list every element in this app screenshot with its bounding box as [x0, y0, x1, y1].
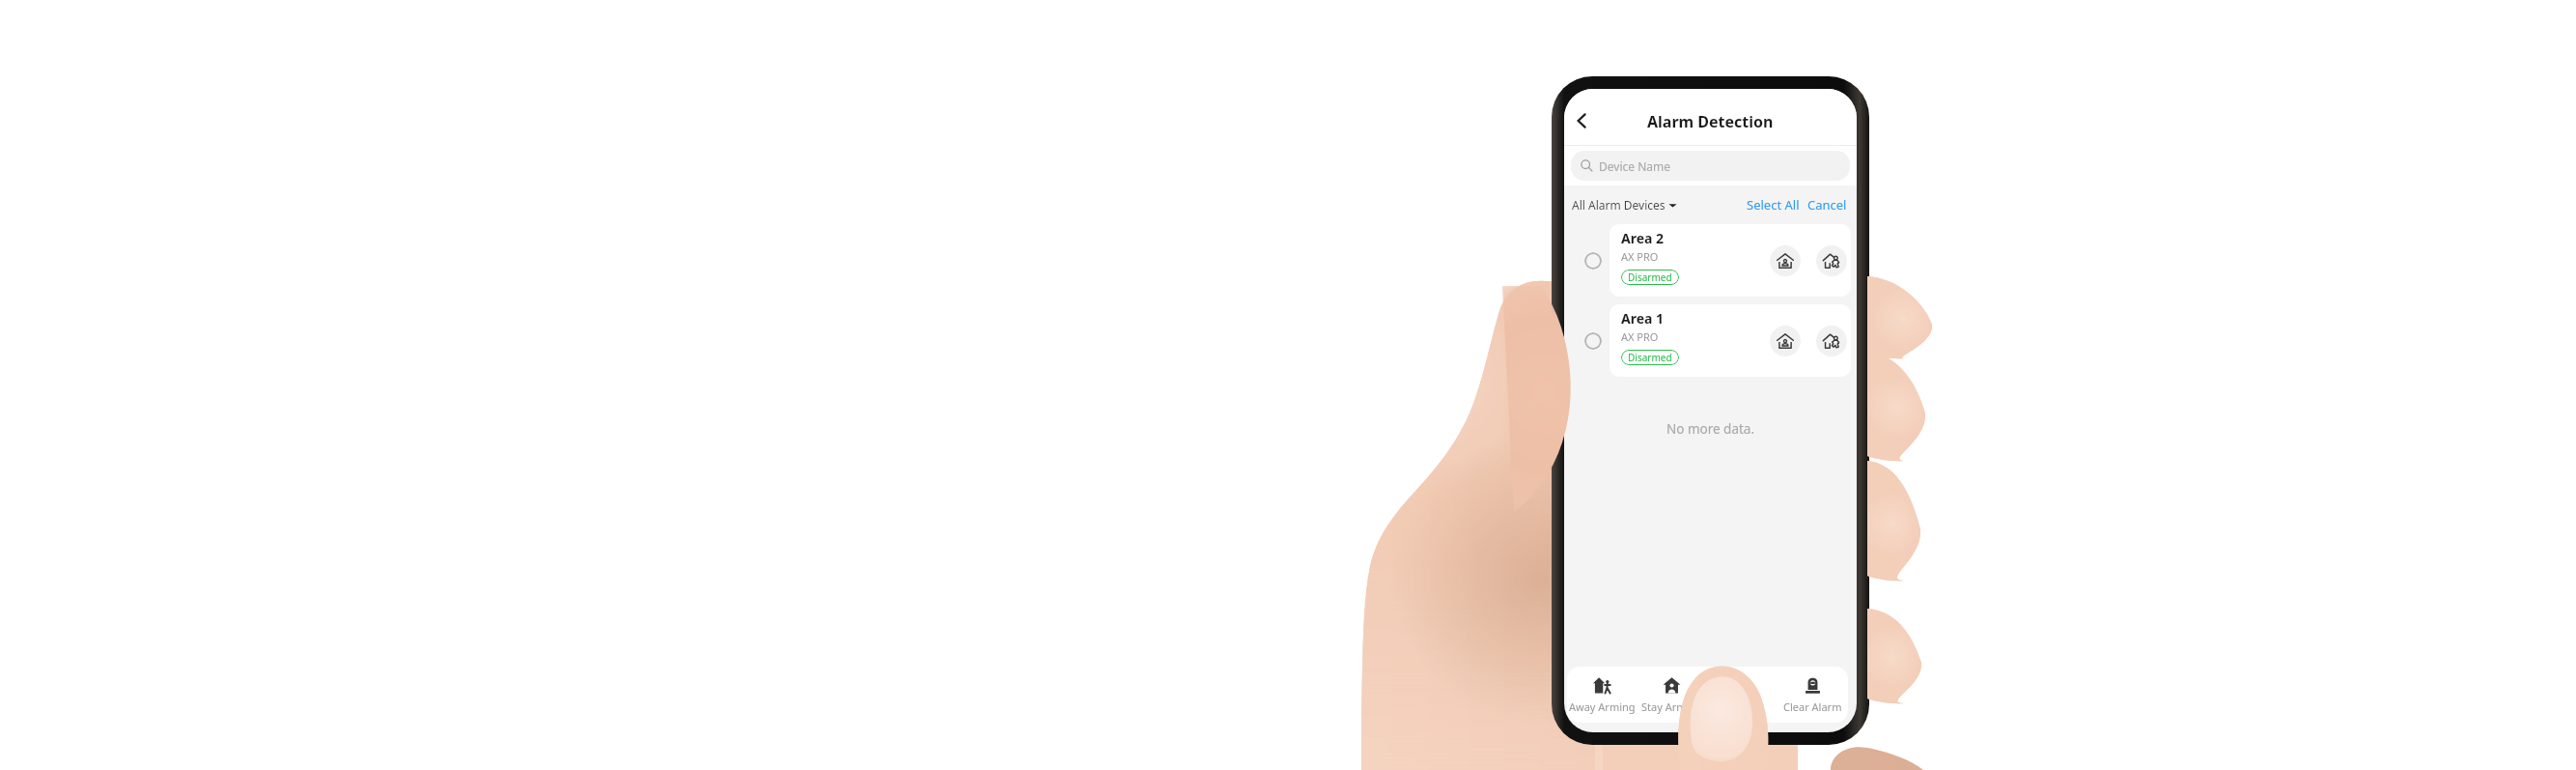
staticText: Disarm	[1724, 699, 1761, 714]
button[interactable]: Select Area 2	[1577, 244, 1610, 277]
button[interactable]: Stay Arming	[1637, 673, 1707, 717]
button[interactable]: Disarm	[1707, 673, 1778, 717]
staticText: All Alarm Devices	[1572, 197, 1666, 213]
staticText: AX PRO	[1621, 329, 1659, 344]
button[interactable]: Back	[1566, 105, 1597, 136]
button[interactable]: Away arming	[1816, 245, 1847, 276]
button[interactable]: Away Arming	[1567, 673, 1637, 717]
staticText: Disarmed	[1628, 271, 1672, 284]
button[interactable]: Stay arming	[1770, 326, 1801, 356]
button[interactable]: Area 1	[1610, 304, 1851, 377]
staticText: Alarm Detection	[1647, 111, 1774, 132]
button[interactable]: Device Name	[1571, 151, 1850, 181]
staticText: Select All	[1747, 196, 1800, 214]
staticText: Area 2	[1621, 229, 1665, 247]
button[interactable]: Clear Alarm	[1778, 673, 1848, 717]
button[interactable]: Stay arming	[1770, 245, 1801, 276]
button[interactable]: Select Area 1	[1577, 325, 1610, 357]
staticText: Device Name	[1599, 158, 1670, 174]
staticText: Disarmed	[1628, 351, 1672, 364]
staticText: Away Arming	[1569, 699, 1636, 714]
staticText: Area 1	[1621, 309, 1665, 328]
staticText: No more data.	[1564, 420, 1857, 438]
button[interactable]: Area 2	[1610, 224, 1851, 297]
staticText: Stay Arming	[1641, 699, 1702, 714]
staticText: Cancel	[1807, 196, 1847, 214]
button[interactable]: All Alarm Devices	[1572, 197, 1677, 213]
button[interactable]: Away arming	[1816, 326, 1847, 356]
staticText: Clear Alarm	[1783, 699, 1842, 714]
button[interactable]: Cancel	[1806, 196, 1849, 214]
staticText: AX PRO	[1621, 249, 1659, 264]
button[interactable]: Select All	[1745, 196, 1802, 214]
